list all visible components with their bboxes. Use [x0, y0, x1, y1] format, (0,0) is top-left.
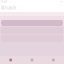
staticText: Blush — [1, 4, 16, 11]
button[interactable]: Browse — [21, 56, 43, 64]
staticText: 9:41 — [1, 0, 8, 4]
button[interactable]: Home — [0, 56, 21, 64]
button[interactable]: Profile — [43, 56, 64, 64]
staticText: ••• — [60, 0, 63, 4]
